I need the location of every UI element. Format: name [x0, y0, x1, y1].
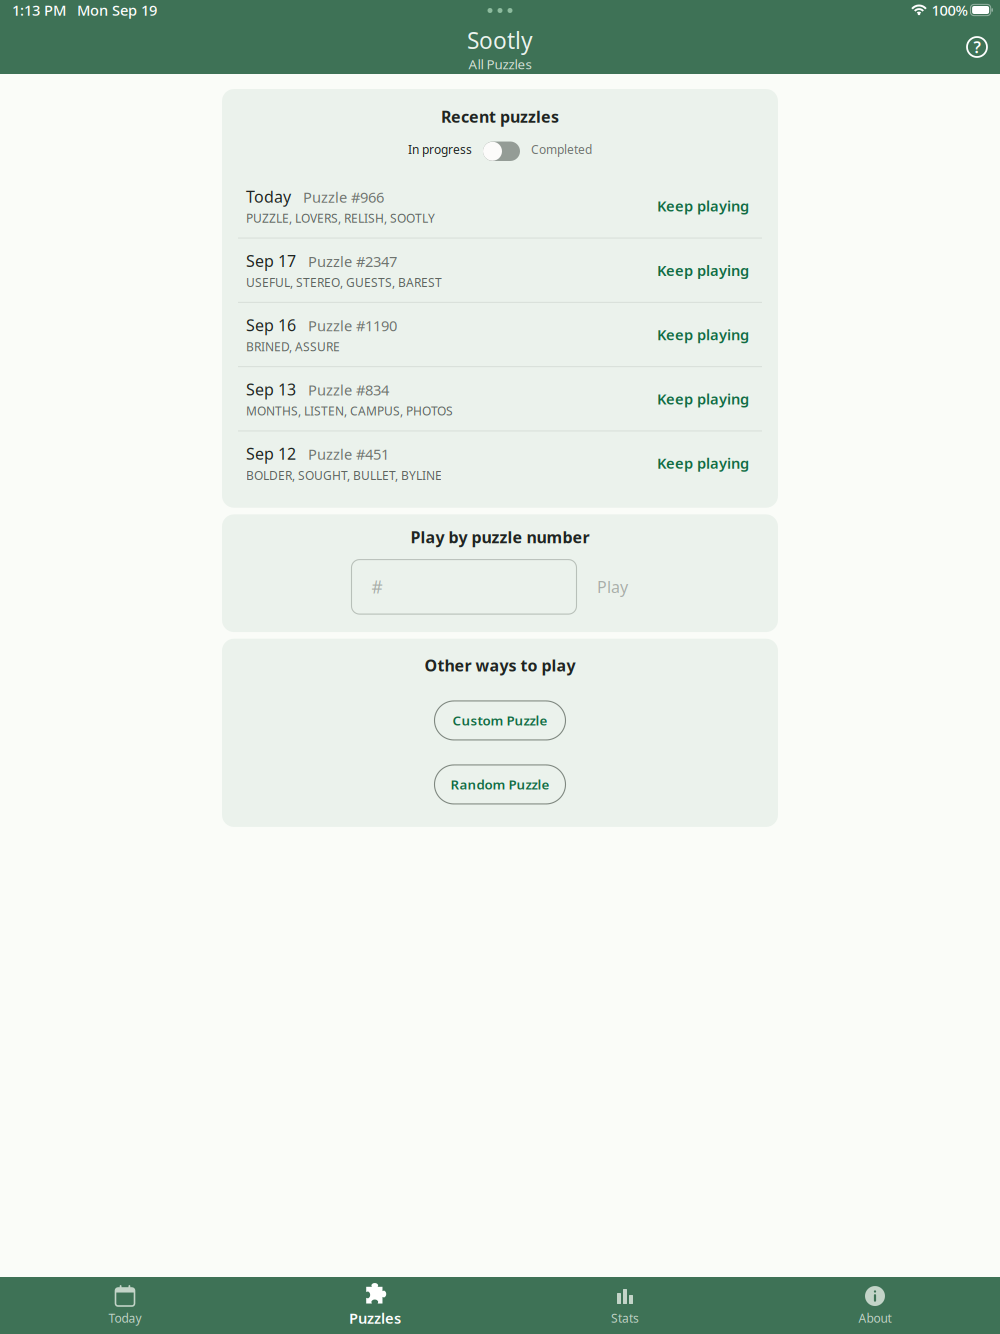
button[interactable]: Help	[955, 28, 1000, 66]
staticText: Play by puzzle number	[410, 526, 589, 547]
staticText: Puzzle #966	[303, 187, 384, 207]
staticText: Keep playing	[657, 325, 749, 344]
staticText: ?	[973, 36, 980, 58]
button[interactable]: Puzzles	[250, 1277, 500, 1334]
button[interactable]: Sep 12	[222, 431, 778, 495]
staticText: Custom Puzzle	[452, 712, 547, 729]
staticText: About	[858, 1310, 891, 1326]
staticText: Other ways to play	[424, 655, 575, 676]
button[interactable]: Play	[576, 565, 648, 609]
staticText: Puzzle #1190	[308, 316, 397, 335]
button[interactable]: Custom Puzzle	[434, 701, 565, 740]
staticText: #	[371, 575, 382, 598]
staticText: BOLDER, SOUGHT, BULLET, BYLINE	[246, 467, 442, 483]
button[interactable]: Sep 17	[222, 238, 778, 302]
staticText: Puzzle #834	[308, 380, 389, 400]
staticText: Stats	[611, 1310, 639, 1326]
button[interactable]: Sep 16	[222, 303, 778, 366]
staticText: Play	[597, 576, 628, 597]
button[interactable]: Today	[222, 174, 778, 237]
staticText: Recent puzzles	[441, 106, 559, 127]
staticText: Keep playing	[657, 260, 749, 280]
staticText: Today	[108, 1310, 141, 1326]
staticText: Mon Sep 19	[77, 0, 157, 20]
staticText: 100%	[931, 0, 967, 20]
staticText: In progress	[408, 141, 472, 157]
staticText: USEFUL, STEREO, GUESTS, BAREST	[246, 274, 442, 290]
staticText: MONTHS, LISTEN, CAMPUS, PHOTOS	[246, 403, 453, 419]
staticText: 1:13 PM	[12, 0, 66, 20]
button[interactable]: Puzzle number	[351, 560, 576, 614]
button[interactable]: Stats	[500, 1277, 750, 1334]
staticText: All Puzzles	[468, 55, 531, 73]
button[interactable]: Random Puzzle	[434, 765, 565, 804]
button[interactable]: About	[750, 1277, 1000, 1334]
staticText: Sep 12	[246, 443, 296, 464]
staticText: Keep playing	[657, 389, 749, 409]
button[interactable]: Today	[0, 1277, 250, 1334]
button[interactable]: Sep 13	[222, 367, 778, 430]
staticText: BRINED, ASSURE	[246, 339, 340, 355]
staticText: Completed	[531, 141, 592, 157]
staticText: Puzzle #451	[308, 444, 389, 464]
staticText: Puzzles	[349, 1308, 401, 1328]
staticText: Random Puzzle	[450, 776, 549, 793]
staticText: Today	[246, 186, 291, 207]
button[interactable]: In progress or completed	[472, 134, 531, 164]
staticText: Keep playing	[657, 453, 749, 473]
staticText: Sootly	[467, 25, 533, 55]
staticText: Puzzle #2347	[308, 251, 397, 271]
staticText: Sep 13	[246, 379, 296, 400]
staticText: Sep 16	[246, 314, 296, 336]
staticText: PUZZLE, LOVERS, RELISH, SOOTLY	[246, 210, 435, 226]
staticText: Keep playing	[657, 196, 749, 216]
staticText: Sep 17	[246, 250, 296, 271]
